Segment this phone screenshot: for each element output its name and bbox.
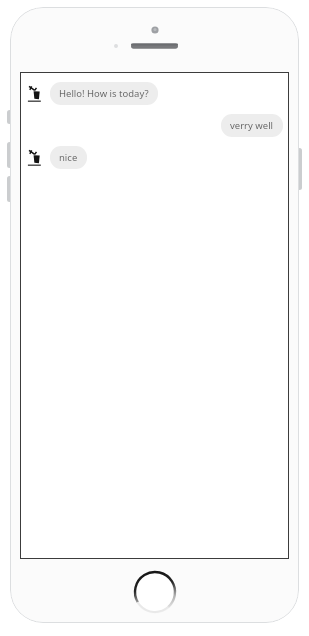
staticText: Hello! How is today? [59,87,149,100]
button[interactable]: Contact avatar [26,146,283,169]
staticText: verry well [230,119,274,132]
other: Contact avatar [26,84,45,103]
button[interactable]: Home [133,570,177,614]
staticText: nice [59,151,78,164]
button[interactable]: verry well [26,114,283,137]
button[interactable]: Contact avatar [26,82,283,105]
other: Contact avatar [26,148,45,167]
